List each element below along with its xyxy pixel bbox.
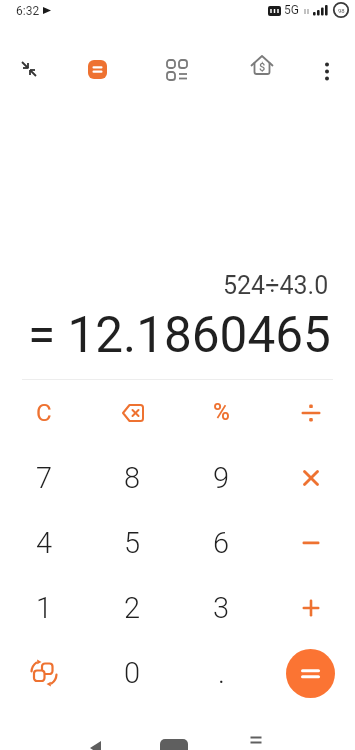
button[interactable] <box>0 640 88 706</box>
button[interactable] <box>315 59 339 83</box>
button[interactable] <box>88 60 107 79</box>
button[interactable]: 7 <box>0 445 88 510</box>
button[interactable]: 6 <box>177 510 266 575</box>
staticText: % <box>213 399 230 426</box>
staticText: C <box>36 399 52 427</box>
staticText: 0 <box>124 656 141 690</box>
button[interactable] <box>156 730 192 750</box>
button[interactable]: 3 <box>177 575 266 640</box>
staticText: 3 <box>213 591 230 625</box>
button[interactable] <box>266 445 355 510</box>
button[interactable]: $ <box>250 54 274 78</box>
staticText: = 12.1860465 <box>28 306 331 364</box>
button[interactable] <box>238 730 274 750</box>
staticText: 524÷43.0 <box>223 271 329 300</box>
button[interactable]: 8 <box>88 445 177 510</box>
staticText: 5 <box>124 526 141 560</box>
button[interactable] <box>266 510 355 575</box>
staticText: 4 <box>36 526 53 560</box>
button[interactable]: C <box>0 380 88 445</box>
button[interactable]: 9 <box>177 445 266 510</box>
button[interactable]: 2 <box>88 575 177 640</box>
staticText: 9 <box>213 461 230 495</box>
button[interactable] <box>286 649 335 698</box>
button[interactable]: 1 <box>0 575 88 640</box>
staticText: 6 <box>213 526 230 560</box>
staticText: 7 <box>36 461 53 495</box>
staticText: . <box>218 656 225 690</box>
staticText: $ <box>259 61 266 74</box>
staticText: 5G <box>284 3 299 17</box>
button[interactable]: 5 <box>88 510 177 575</box>
button[interactable] <box>14 57 46 89</box>
button[interactable] <box>266 640 355 706</box>
button[interactable] <box>165 58 189 82</box>
button[interactable] <box>266 575 355 640</box>
staticText: 8 <box>124 461 141 495</box>
staticText: 1 <box>36 591 53 625</box>
button[interactable]: 4 <box>0 510 88 575</box>
staticText: 98 <box>338 7 345 14</box>
button[interactable]: . <box>177 640 266 706</box>
staticText: 6:32 <box>16 4 40 18</box>
button[interactable] <box>78 730 114 750</box>
button[interactable]: 0 <box>88 640 177 706</box>
button[interactable] <box>266 380 355 445</box>
staticText: 2 <box>124 591 141 625</box>
button[interactable]: % <box>177 380 266 445</box>
button[interactable] <box>88 380 177 445</box>
